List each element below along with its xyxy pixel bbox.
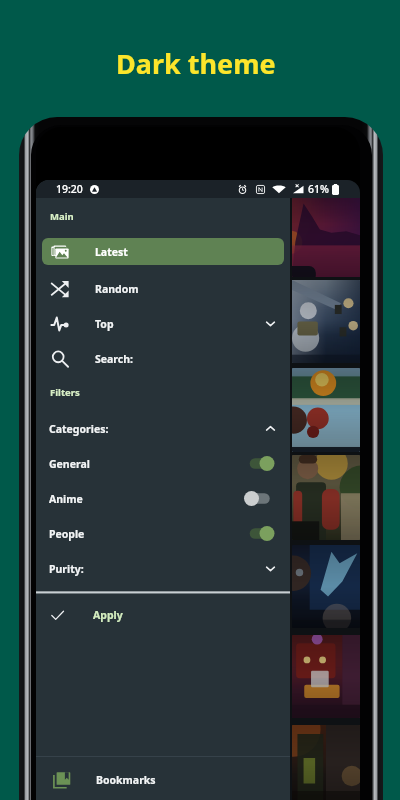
staticText: Random: [95, 282, 139, 296]
staticText: People: [49, 527, 85, 541]
staticText: Anime: [49, 492, 83, 506]
button[interactable]: Latest: [42, 238, 284, 265]
staticText: Purity:: [49, 562, 84, 576]
button[interactable]: Search: [36, 341, 290, 376]
other: Search: [51, 350, 69, 368]
staticText: 19:20: [56, 182, 83, 196]
staticText: Main: [50, 210, 74, 223]
button[interactable]: General: [36, 446, 290, 481]
staticText: Search:: [95, 352, 134, 366]
staticText: Dark theme: [116, 45, 276, 82]
button[interactable]: Purity:: [36, 551, 290, 586]
staticText: Filters: [50, 386, 80, 399]
button[interactable]: Apply: [36, 598, 290, 632]
staticText: Apply: [93, 608, 123, 622]
other: Apply: [50, 608, 65, 623]
staticText: Bookmarks: [96, 773, 156, 787]
button[interactable]: Anime: [36, 481, 290, 516]
staticText: Latest: [95, 245, 128, 259]
staticText: Categories:: [49, 422, 109, 436]
other: Random: [51, 280, 69, 298]
button[interactable]: Bookmarks: [36, 760, 290, 800]
button[interactable]: Categories:: [36, 411, 290, 446]
other: Top: [51, 315, 69, 333]
staticText: General: [49, 457, 90, 471]
button[interactable]: People: [36, 516, 290, 551]
staticText: Top: [95, 317, 114, 331]
staticText: 61%: [308, 182, 329, 196]
button[interactable]: Random: [36, 271, 290, 306]
other: Expand: [264, 317, 277, 330]
button[interactable]: Top: [36, 306, 290, 341]
